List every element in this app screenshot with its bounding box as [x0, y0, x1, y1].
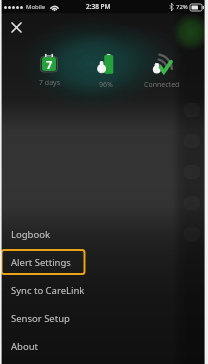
staticText: Alert Settings	[11, 256, 71, 269]
button[interactable]: Alert Settings	[0, 248, 208, 276]
staticText: 72%	[176, 3, 188, 11]
button[interactable]: Sensor Setup	[0, 304, 208, 332]
staticText: Sync to CareLink	[11, 284, 85, 297]
button[interactable]: Logbook	[0, 220, 208, 248]
staticText: Sensor Setup	[11, 312, 70, 325]
staticText: Logbook	[11, 228, 50, 241]
staticText: Connected	[144, 80, 180, 90]
staticText: 2:38 PM	[86, 2, 111, 11]
button[interactable]: Sync to CareLink	[0, 276, 208, 304]
staticText: 7 days	[39, 78, 60, 88]
button[interactable]: About	[0, 332, 208, 360]
staticText: 7	[46, 57, 53, 71]
button[interactable]: Close	[0, 11, 32, 43]
staticText: Mobile	[26, 3, 46, 11]
staticText: 96%	[99, 80, 113, 90]
staticText: About	[11, 340, 38, 353]
